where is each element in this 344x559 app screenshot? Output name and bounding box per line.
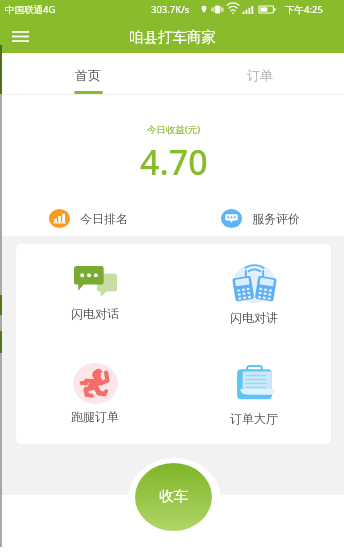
button[interactable]: 闪电对话	[16, 244, 174, 344]
staticText: 收车	[159, 487, 188, 505]
button[interactable]: 订单	[172, 53, 344, 95]
staticText: 跑腿订单	[71, 409, 119, 424]
staticText: 订单大厅	[230, 411, 278, 426]
staticText: 今日排名	[80, 211, 128, 226]
button[interactable]: 服务评价	[172, 200, 344, 236]
button[interactable]: 首页	[0, 53, 172, 95]
staticText: 首页	[75, 67, 101, 83]
button[interactable]: 订单大厅	[173, 344, 331, 444]
staticText: 4.70	[140, 139, 208, 185]
staticText: 下午4:25	[285, 3, 323, 16]
staticText: 今日收益(元)	[147, 123, 201, 136]
button[interactable]: 跑腿订单	[16, 344, 174, 444]
button[interactable]: 今日排名	[0, 200, 172, 236]
staticText: 服务评价	[252, 211, 300, 226]
button[interactable]: 闪电对讲	[173, 244, 331, 344]
staticText: 303.7K/s	[151, 3, 190, 16]
button[interactable]: 收车	[135, 463, 212, 531]
button[interactable]: Open navigation menu	[4, 20, 36, 52]
staticText: 中国联通4G	[5, 3, 56, 16]
staticText: 闪电对讲	[230, 310, 278, 325]
staticText: 订单	[247, 67, 273, 83]
staticText: 咱县打车商家	[129, 28, 216, 46]
staticText: 闪电对话	[71, 306, 119, 321]
